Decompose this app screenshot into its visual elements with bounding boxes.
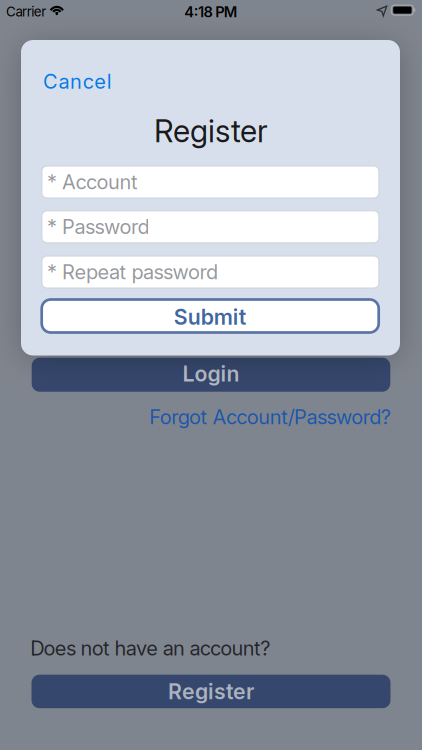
- staticText: * Repeat password: [47, 260, 218, 284]
- staticText: * Password: [47, 215, 149, 239]
- button[interactable]: Submit: [42, 299, 379, 332]
- button[interactable]: * Password: [42, 211, 379, 243]
- staticText: Carrier: [6, 4, 46, 19]
- staticText: Forgot Account/Password?: [149, 405, 391, 429]
- staticText: Submit: [174, 304, 247, 330]
- button[interactable]: Cancel: [43, 70, 112, 93]
- staticText: 4:18 PM: [184, 3, 238, 20]
- staticText: Register: [168, 679, 254, 704]
- button[interactable]: Register: [31, 675, 390, 708]
- staticText: Register: [154, 113, 268, 149]
- staticText: Cancel: [43, 70, 112, 93]
- staticText: Does not have an account?: [30, 636, 270, 660]
- button[interactable]: * Account: [42, 166, 379, 198]
- button[interactable]: * Repeat password: [42, 256, 379, 288]
- staticText: * Account: [47, 170, 138, 194]
- button[interactable]: Forgot Account/Password?: [149, 405, 391, 429]
- staticText: Login: [182, 361, 239, 386]
- button[interactable]: Login: [32, 358, 390, 392]
